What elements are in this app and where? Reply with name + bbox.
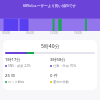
staticText: 仕事・学習 70% [53, 64, 77, 68]
staticText: 25 回 [5, 73, 16, 79]
button[interactable]: 3時58分 [50, 57, 95, 68]
staticText: 12:00 [50, 31, 59, 35]
staticText: ロック解除 [8, 80, 25, 84]
staticText: 68%のユーザーより長い傾向です [23, 3, 77, 8]
button[interactable]: 0 件 [50, 73, 95, 84]
staticText: 0 件 [50, 73, 58, 79]
staticText: SNS・娯楽 22% [8, 64, 31, 68]
staticText: 00:00 [2, 31, 11, 35]
staticText: 18:00 [74, 31, 83, 35]
staticText: 06:00 [26, 31, 35, 35]
staticText: 5時40分 [41, 43, 60, 50]
button[interactable]: 1時17分 [5, 57, 50, 68]
staticText: 1時17分 [5, 57, 21, 63]
staticText: 通知の件数 [53, 80, 70, 84]
staticText: 3時58分 [50, 57, 66, 63]
button[interactable]: 25 回 [5, 73, 50, 84]
